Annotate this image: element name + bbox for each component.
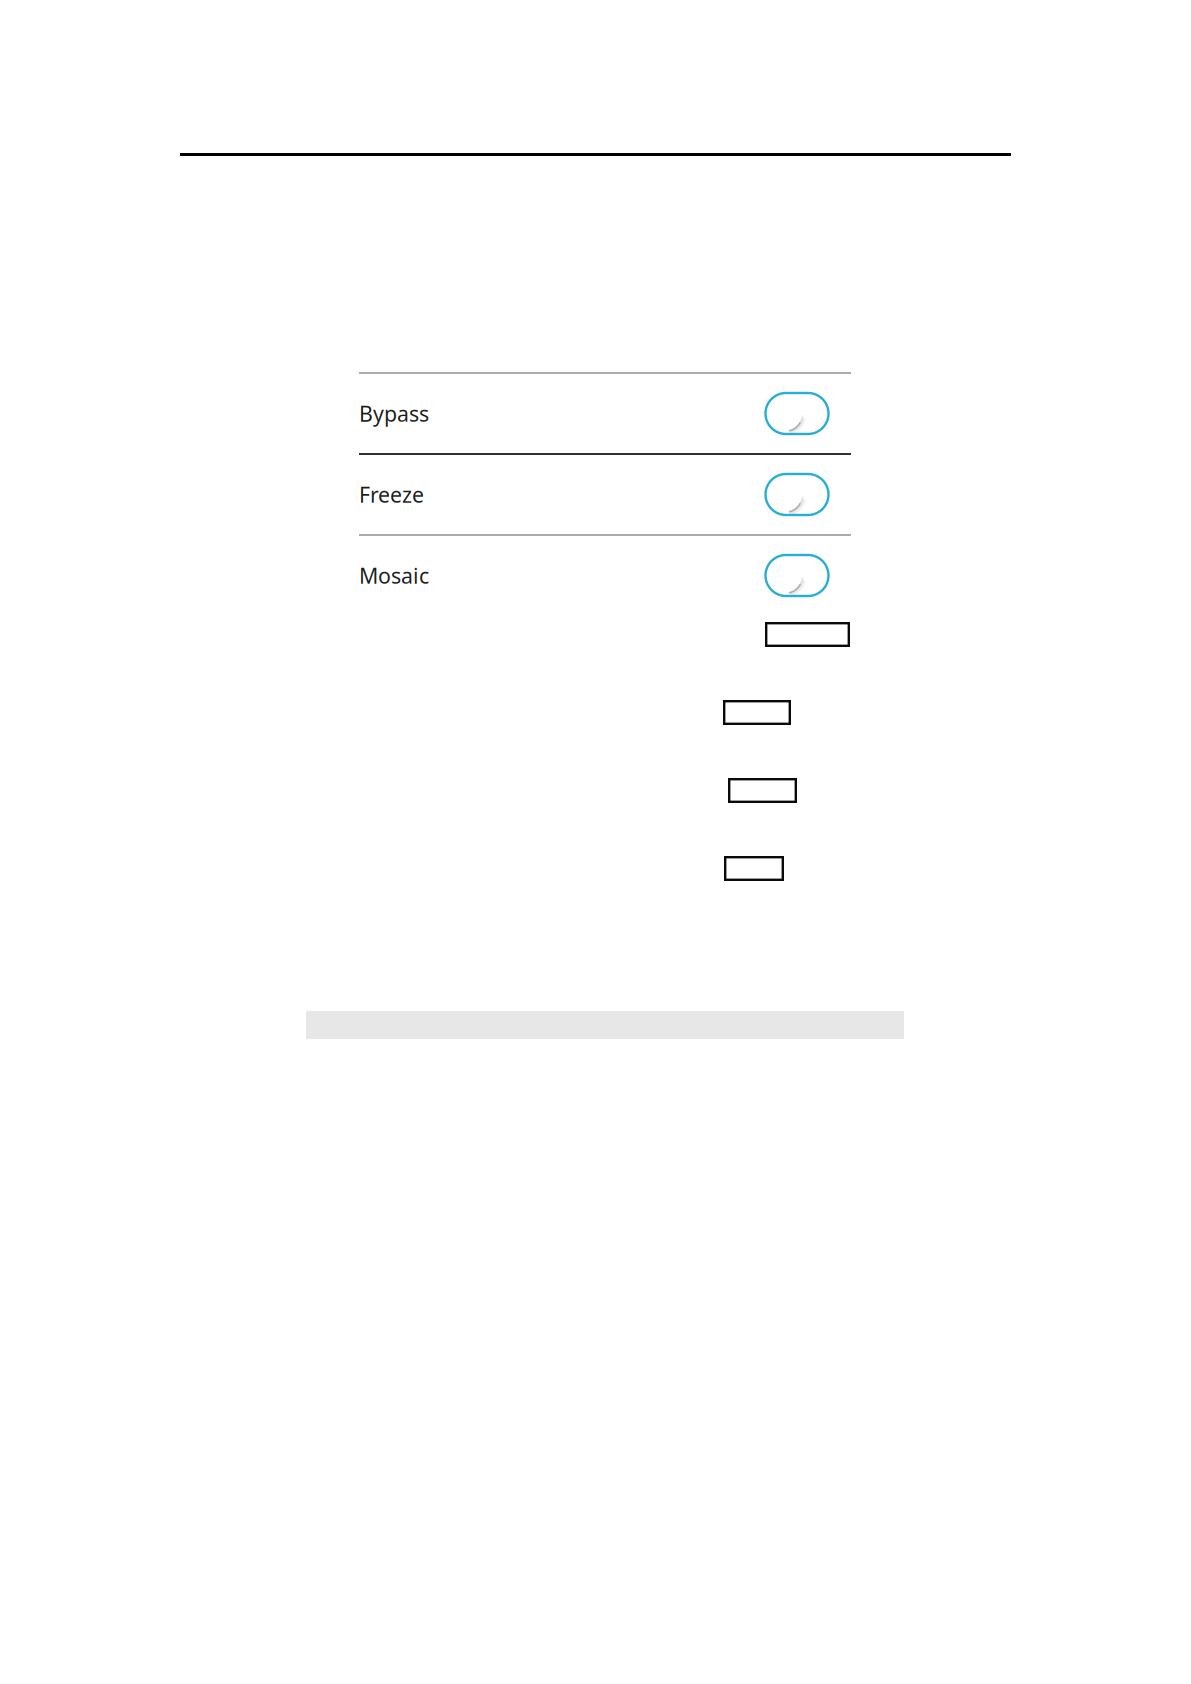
staticText: Freeze <box>359 480 424 509</box>
button[interactable]: Text field <box>728 778 797 803</box>
button[interactable]: Text field <box>723 700 791 725</box>
staticText: Bypass <box>359 399 429 428</box>
button[interactable]: Toggle <box>765 392 829 434</box>
staticText: Mosaic <box>359 561 429 590</box>
button[interactable]: Text field <box>765 622 850 647</box>
button[interactable]: Toggle <box>765 473 829 515</box>
button[interactable]: Bypass <box>359 374 851 453</box>
button[interactable]: Text field <box>724 856 784 881</box>
button[interactable]: Toggle <box>765 554 829 596</box>
button[interactable]: Freeze <box>359 455 851 534</box>
button[interactable]: Mosaic <box>359 536 851 615</box>
